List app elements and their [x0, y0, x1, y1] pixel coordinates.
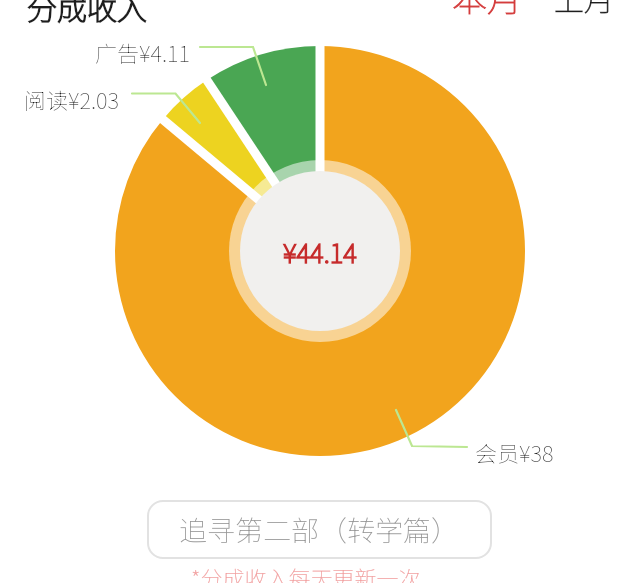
staticText: 分成收入 — [27, 0, 147, 28]
staticText: 上月 — [554, 0, 614, 19]
staticText: 广告¥4.11 — [95, 36, 190, 68]
button[interactable]: 追寻第二部（转学篇） — [147, 500, 492, 559]
button[interactable]: 上月 — [554, 0, 614, 19]
staticText: 本月 — [452, 0, 523, 22]
staticText: 会员¥38 — [475, 436, 554, 468]
staticText: 分成收入 — [27, 0, 147, 28]
button[interactable]: 本月 — [452, 0, 523, 22]
staticText: *分成收入每天更新一次 — [191, 561, 421, 583]
staticText: 上月 — [554, 0, 614, 19]
staticText: 追寻第二部（转学篇） — [179, 509, 460, 550]
staticText: ¥44.14 — [283, 233, 357, 271]
staticText: 本月 — [452, 0, 523, 22]
staticText: ¥44.14 — [283, 233, 357, 271]
staticText: 阅读¥2.03 — [24, 83, 119, 115]
